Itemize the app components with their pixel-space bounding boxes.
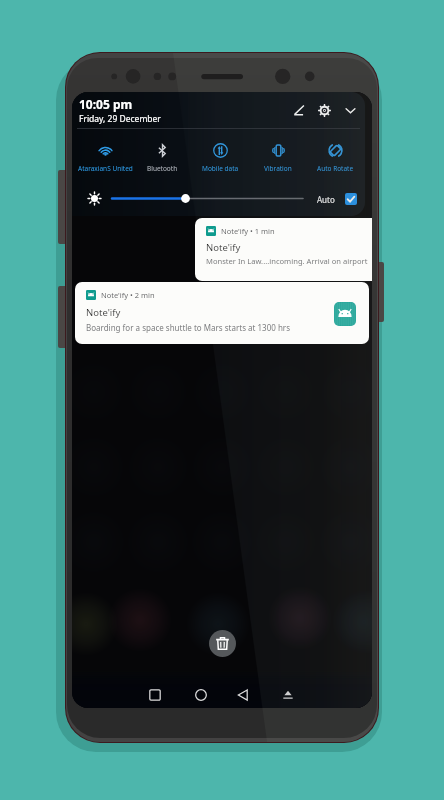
staticText: Auto Rotate <box>317 164 354 173</box>
button[interactable]: Settings <box>315 101 333 119</box>
button[interactable]: AtaraxianS United <box>76 129 134 180</box>
button[interactable]: Back <box>232 684 254 706</box>
button[interactable]: Expand <box>341 101 359 119</box>
button[interactable]: Clear all notifications <box>209 630 236 657</box>
staticText: Boarding for a space shuttle to Mars sta… <box>86 322 290 333</box>
button[interactable]: Note'ify • 1 min <box>195 218 372 281</box>
staticText: Note'ify • 2 min <box>101 290 155 300</box>
staticText: Bluetooth <box>147 164 178 173</box>
button[interactable]: Edit quick settings <box>290 101 308 119</box>
staticText: Note'ify • 1 min <box>221 226 275 236</box>
staticText: Note'ify <box>206 241 241 254</box>
button[interactable]: Note'ify • 2 min <box>75 282 369 344</box>
staticText: Friday, 29 December <box>79 113 161 125</box>
button[interactable]: Brightness slider <box>112 190 303 207</box>
staticText: Monster In Law....incoming. Arrival on a… <box>206 256 372 266</box>
button[interactable]: Hide keyboard <box>277 684 299 706</box>
button[interactable]: Recents <box>144 684 166 706</box>
button[interactable]: Mobile data <box>191 129 249 180</box>
button[interactable]: Vibration <box>249 129 307 180</box>
button[interactable]: Auto brightness <box>345 193 357 205</box>
button[interactable]: Brightness <box>86 190 103 207</box>
staticText: Auto <box>317 194 335 205</box>
staticText: Note'ify <box>86 306 121 319</box>
staticText: 10:05 pm <box>79 96 133 112</box>
staticText: Vibration <box>264 164 292 173</box>
staticText: AtaraxianS United <box>78 164 133 173</box>
button[interactable]: Auto Rotate <box>306 129 364 180</box>
button[interactable]: Bluetooth <box>133 129 191 180</box>
staticText: Mobile data <box>202 164 239 173</box>
button[interactable]: Home <box>190 684 212 706</box>
